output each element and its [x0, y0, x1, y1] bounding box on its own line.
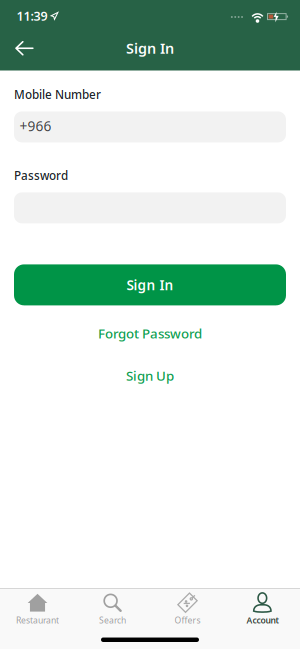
button[interactable]: Offers: [150, 593, 225, 626]
button[interactable]: Forgot Password: [98, 324, 202, 342]
button[interactable]: Mobile Number: [14, 111, 286, 142]
staticText: Search: [99, 614, 126, 626]
staticText: Mobile Number: [14, 86, 101, 102]
button[interactable]: Back: [0, 31, 33, 65]
staticText: Account: [246, 614, 278, 626]
button[interactable]: Sign In: [14, 264, 286, 305]
staticText: Sign In: [126, 276, 173, 294]
staticText: Offers: [174, 614, 200, 626]
button[interactable]: Sign Up: [126, 366, 174, 385]
staticText: Password: [14, 167, 68, 183]
button[interactable]: Account: [225, 593, 300, 626]
staticText: Forgot Password: [98, 324, 202, 342]
staticText: Sign In: [126, 38, 174, 58]
staticText: 11:39: [16, 7, 47, 24]
button[interactable]: Search: [75, 593, 150, 626]
staticText: Restaurant: [16, 614, 59, 626]
button[interactable]: Restaurant: [0, 593, 75, 626]
staticText: Sign Up: [126, 366, 174, 385]
staticText: +966: [19, 117, 51, 135]
